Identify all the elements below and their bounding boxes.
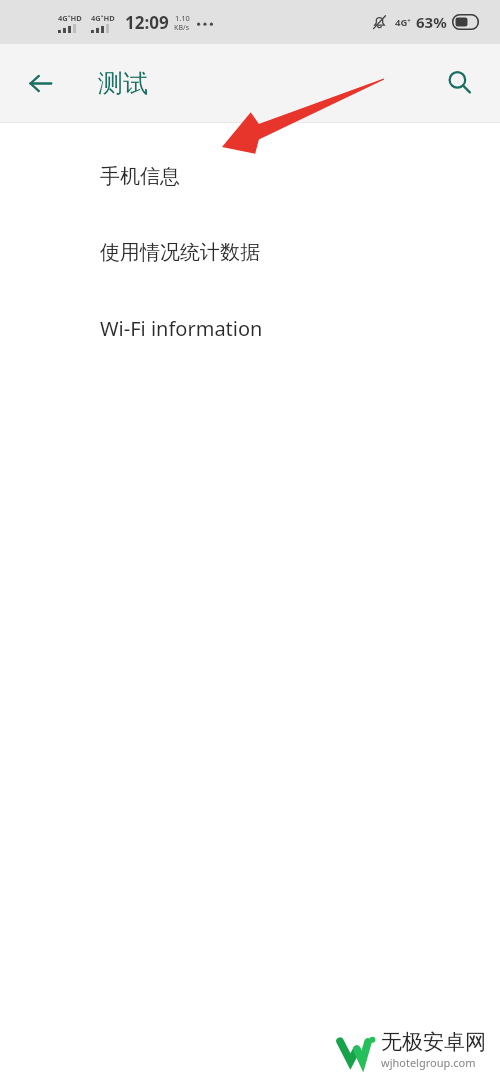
- staticText: 测试: [98, 68, 148, 99]
- button[interactable]: 手机信息: [0, 138, 500, 214]
- button[interactable]: Wi-Fi information: [0, 290, 500, 366]
- staticText: 12:09: [125, 11, 169, 34]
- staticText: 1.10: [175, 13, 190, 23]
- staticText: 4G⁺: [395, 16, 411, 29]
- staticText: 使用情况统计数据: [100, 240, 260, 265]
- button[interactable]: Search: [434, 57, 486, 109]
- staticText: KB/s: [174, 23, 190, 33]
- staticText: 手机信息: [100, 164, 180, 189]
- staticText: 4G⁺HD: [58, 13, 82, 23]
- staticText: wjhotelgroup.com: [381, 1055, 476, 1070]
- button[interactable]: 使用情况统计数据: [0, 214, 500, 290]
- staticText: 无极安卓网: [381, 1029, 486, 1055]
- button[interactable]: Back: [14, 57, 66, 109]
- staticText: 4G⁺HD: [91, 13, 115, 23]
- staticText: Wi-Fi information: [100, 315, 263, 342]
- staticText: 63%: [416, 12, 447, 32]
